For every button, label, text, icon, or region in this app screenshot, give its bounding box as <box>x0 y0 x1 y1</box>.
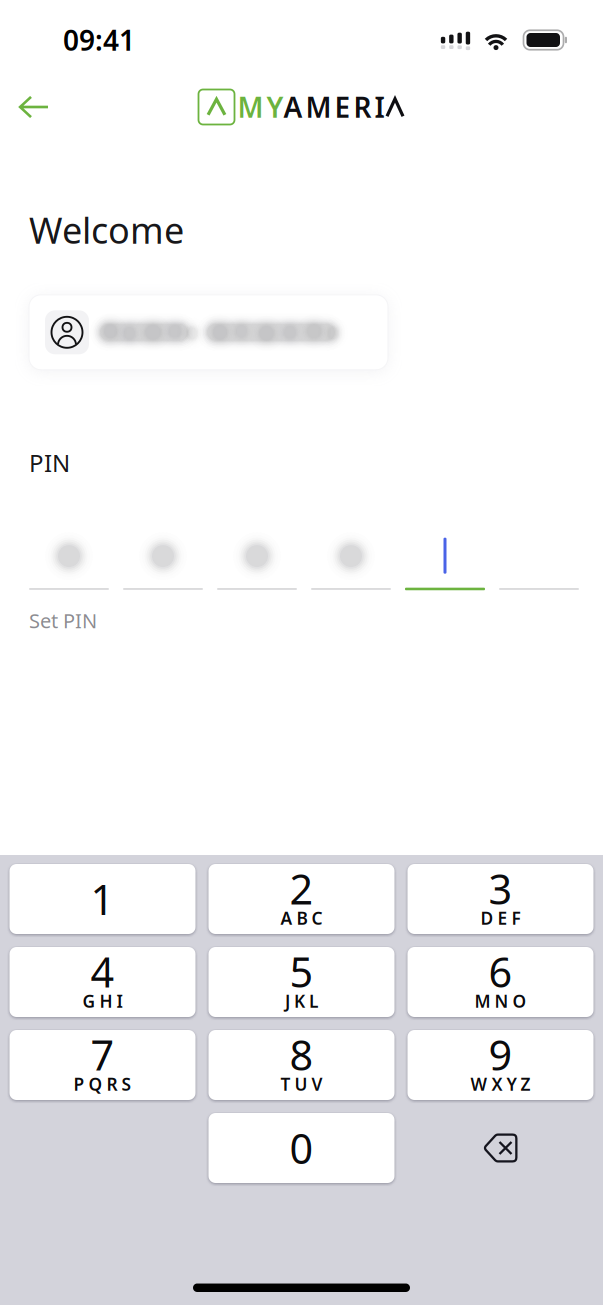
staticText: 09:41 <box>63 21 135 59</box>
button[interactable]: 2 <box>208 864 394 934</box>
staticText: A M E R I <box>283 88 384 126</box>
staticText: T U V <box>280 1072 322 1095</box>
button[interactable]: 5 <box>208 947 394 1017</box>
staticText: 1 <box>90 872 114 926</box>
staticText: 0 <box>289 1121 313 1175</box>
staticText: 6 <box>488 944 512 999</box>
button[interactable]: Delete <box>407 1113 593 1183</box>
staticText: 7 <box>90 1027 114 1082</box>
staticText: G H I <box>82 989 122 1012</box>
staticText: A B C <box>280 906 322 929</box>
staticText: 5 <box>289 944 313 999</box>
button[interactable]: 0 <box>208 1113 394 1183</box>
staticText: J K L <box>285 989 318 1012</box>
staticText: 4 <box>90 944 114 999</box>
staticText: Set PIN <box>29 607 97 634</box>
button[interactable]: 4 <box>9 947 195 1017</box>
staticText: P Q R S <box>73 1072 131 1095</box>
staticText: 8 <box>289 1027 313 1082</box>
staticText: 2 <box>289 861 313 916</box>
staticText: D E F <box>480 906 520 929</box>
staticText: M Y <box>237 88 283 126</box>
button[interactable]: 1 <box>9 864 195 934</box>
staticText: W X Y Z <box>470 1072 530 1095</box>
staticText: 9 <box>488 1027 512 1082</box>
button[interactable]: Back <box>6 83 62 131</box>
button[interactable]: 9 <box>407 1030 593 1100</box>
button[interactable]: 3 <box>407 864 593 934</box>
button[interactable]: 6 <box>407 947 593 1017</box>
button[interactable] <box>29 295 388 370</box>
staticText: PIN <box>29 447 70 479</box>
staticText: M N O <box>474 989 526 1012</box>
button[interactable]: 7 <box>9 1030 195 1100</box>
staticText: 3 <box>488 861 512 916</box>
button[interactable]: 8 <box>208 1030 394 1100</box>
staticText: Welcome <box>29 206 184 254</box>
